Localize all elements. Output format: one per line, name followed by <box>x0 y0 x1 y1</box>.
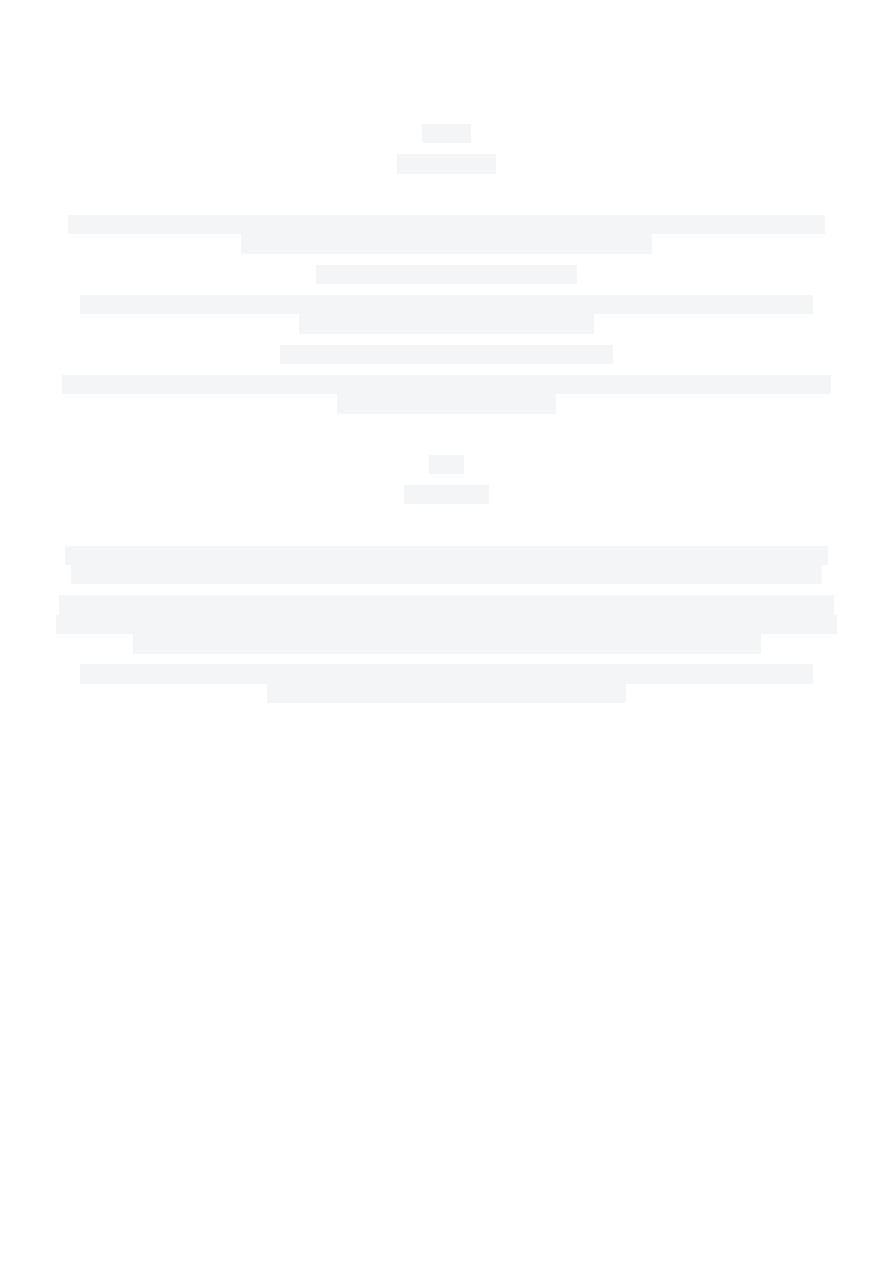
other: Article, loading <box>0 0 893 1263</box>
